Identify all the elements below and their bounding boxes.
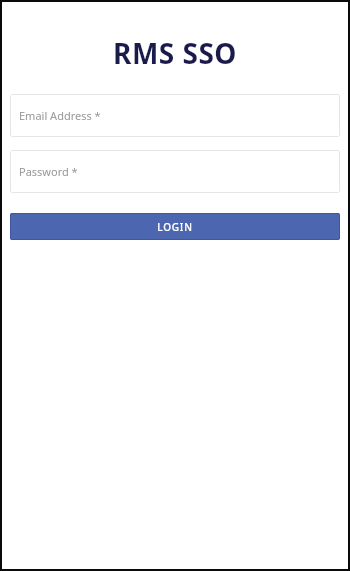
button[interactable]: Login [10,213,340,240]
staticText: Email Address * [19,108,101,123]
button[interactable]: Email Address * [10,94,340,137]
staticText: Password * [19,164,78,179]
staticText: LOGIN [157,220,193,234]
button[interactable]: Password * [10,150,340,193]
staticText: RMS SSO [10,34,340,72]
